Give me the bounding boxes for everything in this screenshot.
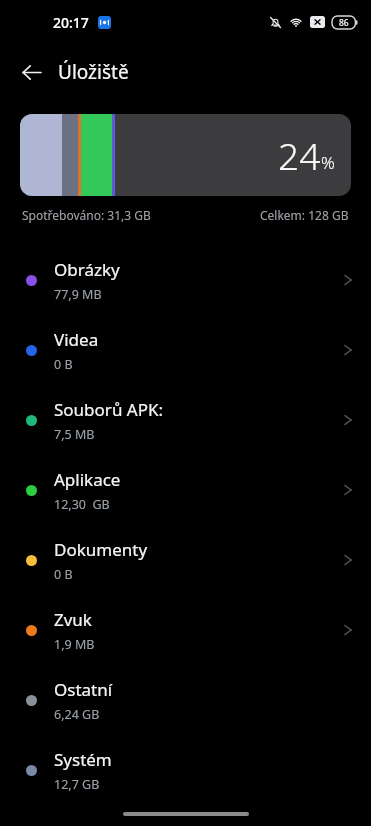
button[interactable]: Dokumenty: [0, 525, 371, 595]
staticText: 12,7 GB: [54, 776, 100, 793]
staticText: 7,5 MB: [54, 426, 95, 443]
button[interactable]: Back: [10, 51, 52, 93]
staticText: Obrázky: [54, 258, 120, 281]
button[interactable]: Videa: [0, 315, 371, 385]
staticText: Aplikace: [54, 468, 121, 491]
button[interactable]: Souborů APK:: [0, 385, 371, 455]
staticText: 0 B: [54, 566, 73, 583]
staticText: Úložiště: [58, 59, 129, 85]
staticText: Dokumenty: [54, 538, 148, 561]
staticText: Souborů APK:: [54, 398, 164, 421]
button[interactable]: Zvuk: [0, 595, 371, 665]
staticText: Systém: [54, 748, 112, 771]
staticText: 1,9 MB: [54, 636, 95, 653]
button[interactable]: Aplikace: [0, 455, 371, 525]
button[interactable]: Obrázky: [0, 245, 371, 315]
staticText: 20:17: [53, 13, 89, 32]
staticText: Spotřebováno: 31,3 GB: [22, 207, 151, 223]
staticText: 6,24 GB: [54, 706, 100, 723]
staticText: 86: [339, 17, 349, 29]
staticText: 12,30 GB: [54, 496, 110, 513]
staticText: 77,9 MB: [54, 286, 102, 303]
staticText: 24: [278, 130, 321, 180]
button[interactable]: Systém: [0, 735, 371, 805]
staticText: Videa: [54, 328, 99, 351]
staticText: Ostatní: [54, 678, 113, 701]
staticText: 0 B: [54, 356, 73, 373]
button[interactable]: 24: [20, 114, 351, 196]
staticText: Celkem: 128 GB: [260, 207, 349, 223]
button[interactable]: Ostatní: [0, 665, 371, 735]
staticText: Zvuk: [54, 608, 92, 631]
staticText: %: [321, 151, 335, 174]
